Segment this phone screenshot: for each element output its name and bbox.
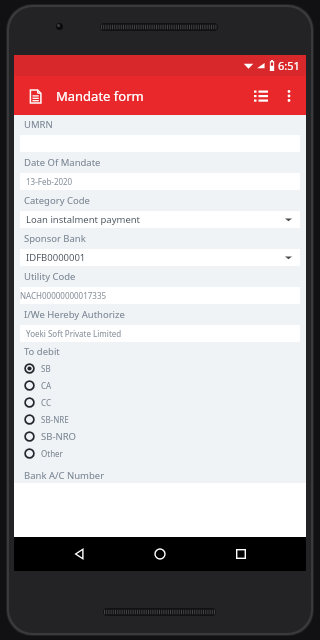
button[interactable]: I/We Hereby Authorize [14, 305, 306, 343]
button[interactable]: Sponsor Bank [14, 229, 306, 267]
staticText: Category Code [24, 194, 90, 207]
button[interactable]: More options [276, 83, 302, 109]
staticText: CC [41, 397, 51, 408]
button[interactable]: Date Of Mandate [14, 153, 306, 191]
button[interactable]: Category Code [14, 191, 306, 229]
button[interactable]: CC [14, 394, 306, 411]
button[interactable]: SB [14, 360, 306, 377]
staticText: Bank A/C Number [24, 469, 105, 482]
staticText: SB [41, 363, 51, 374]
button[interactable]: UMRN [14, 115, 306, 153]
staticText: CA [41, 380, 52, 391]
button[interactable]: List view [246, 81, 276, 111]
button[interactable]: Mandate form [22, 83, 48, 109]
staticText: Loan instalment payment [26, 213, 141, 226]
staticText: SB-NRO [41, 430, 76, 443]
button[interactable]: SB-NRE [14, 411, 306, 428]
staticText: NACH00000000017335 [20, 290, 107, 301]
button[interactable]: Utility Code [14, 267, 306, 305]
staticText: SB-NRE [41, 414, 69, 425]
button[interactable]: SB-NRO [14, 428, 306, 445]
staticText: I/We Hereby Authorize [24, 308, 125, 321]
staticText: Yoeki Soft Private Limited [26, 328, 122, 339]
staticText: To debit [24, 345, 60, 358]
staticText: 6:51 [278, 58, 300, 73]
staticText: 13-Feb-2020 [26, 176, 73, 187]
staticText: UMRN [24, 118, 53, 131]
button[interactable]: Home [145, 539, 175, 569]
button[interactable]: Recent apps [226, 539, 256, 569]
staticText: Date Of Mandate [24, 156, 101, 169]
staticText: Sponsor Bank [24, 232, 86, 245]
staticText: Other [41, 448, 63, 459]
button[interactable]: CA [14, 377, 306, 394]
button[interactable]: Other [14, 445, 306, 462]
staticText: Utility Code [24, 270, 76, 283]
button[interactable]: Back [65, 539, 95, 569]
staticText: Mandate form [56, 87, 144, 105]
staticText: IDFB0000001 [26, 251, 86, 264]
